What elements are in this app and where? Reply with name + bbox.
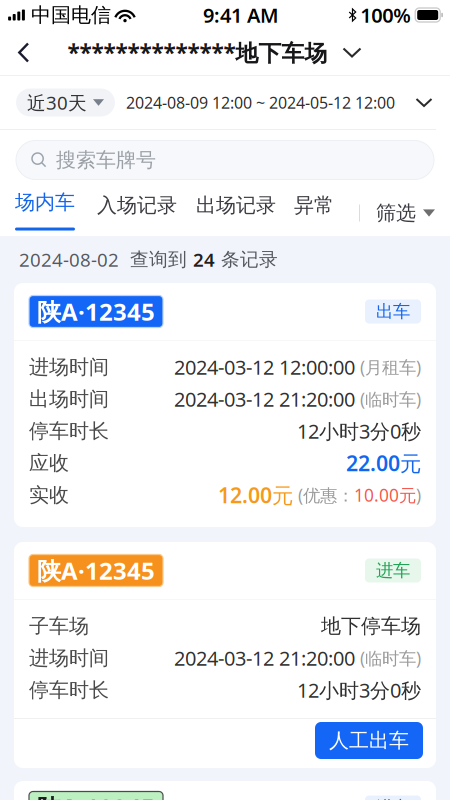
staticText: 地下停车场 <box>321 614 421 638</box>
staticText: 场内车 <box>15 190 75 215</box>
staticText: 陕A·12345 <box>37 296 155 327</box>
staticText: 入场记录 <box>97 193 177 218</box>
staticText: 停车时长 <box>29 419 109 443</box>
button[interactable]: 搜索车牌号 <box>0 130 450 190</box>
staticText: 9:41 AM <box>203 2 279 28</box>
staticText: 陕A·12345 <box>37 792 155 800</box>
button[interactable]: 陕A·12345 <box>0 283 450 527</box>
staticText: 近30天 <box>27 90 87 115</box>
staticText: 12小时3分0秒 <box>297 677 421 703</box>
button[interactable]: 筛选 <box>360 193 435 233</box>
button[interactable]: 异常 <box>294 193 334 233</box>
staticText: (临时车) <box>360 387 421 410</box>
staticText: 出场时间 <box>29 387 109 411</box>
staticText: ) <box>416 483 421 506</box>
staticText: 实收 <box>29 483 69 507</box>
staticText: (优惠： <box>293 483 354 506</box>
staticText: 2024-03-12 21:20:00 <box>174 645 355 671</box>
button[interactable]: 返回 <box>0 29 48 75</box>
staticText: 进车 <box>376 560 410 581</box>
staticText: 中国电信 <box>31 3 111 27</box>
staticText: (月租车) <box>360 355 421 378</box>
staticText: 进车 <box>376 797 410 800</box>
staticText: 异常 <box>294 193 334 218</box>
staticText: **************地下车场 <box>67 37 327 67</box>
button[interactable]: 出场记录 <box>196 193 276 233</box>
staticText: 出场记录 <box>196 193 276 218</box>
staticText: 100% <box>360 2 411 28</box>
staticText: 应收 <box>29 451 69 475</box>
button[interactable]: **************地下车场 <box>67 37 360 67</box>
staticText: 查询到 <box>130 248 193 271</box>
staticText: (临时车) <box>360 646 421 669</box>
button[interactable]: 近30天 <box>16 88 115 116</box>
staticText: 12小时3分0秒 <box>297 418 421 444</box>
staticText: 12.00元 <box>218 481 293 509</box>
button[interactable]: 入场记录 <box>97 193 177 233</box>
staticText: 子车场 <box>29 614 89 638</box>
staticText: 人工出车 <box>329 728 409 753</box>
staticText: 22.00元 <box>346 449 421 477</box>
staticText: 条记录 <box>215 248 278 271</box>
staticText: 2024-03-12 21:20:00 <box>174 386 355 412</box>
button[interactable]: 2024-08-09 12:00 ~ 2024-05-12 12:00 <box>115 92 395 113</box>
staticText: 10.00元 <box>354 483 416 506</box>
button[interactable]: 场内车 <box>15 190 75 236</box>
button[interactable]: 人工出车 <box>315 722 423 759</box>
staticText: 进场时间 <box>29 646 109 670</box>
staticText: 2024-08-02 <box>19 247 119 272</box>
staticText: 2024-03-12 12:00:00 <box>174 354 355 380</box>
staticText: 24 <box>193 247 215 272</box>
staticText: 出车 <box>376 301 410 322</box>
staticText: 停车时长 <box>29 678 109 702</box>
staticText: 筛选 <box>376 201 416 225</box>
staticText: 进场时间 <box>29 355 109 379</box>
button[interactable]: 展开日期选择 <box>414 87 434 117</box>
staticText: 搜索车牌号 <box>56 148 156 172</box>
staticText: 2024-08-09 12:00 ~ 2024-05-12 12:00 <box>126 92 395 113</box>
staticText: 陕A·12345 <box>37 555 155 586</box>
